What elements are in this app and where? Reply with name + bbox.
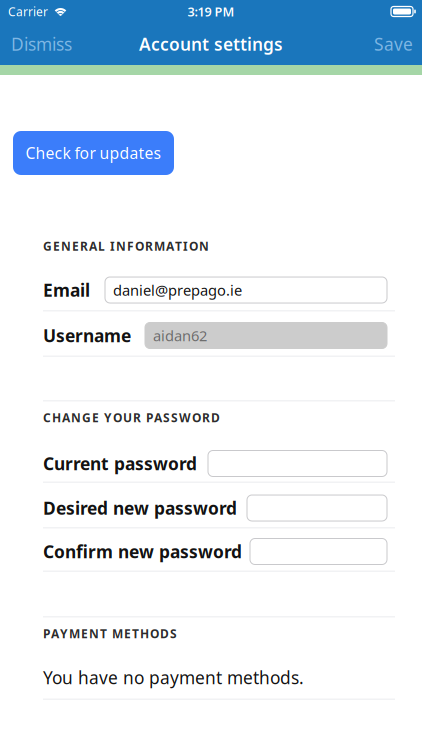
staticText: C H A N G E Y O U R P A S S W O R D	[43, 409, 220, 426]
staticText: Desired new password	[43, 496, 237, 520]
button[interactable]: Save	[365, 23, 422, 65]
staticText: 3:19 PM	[187, 3, 234, 20]
staticText: daniel@prepago.ie	[113, 280, 242, 300]
staticText: Carrier	[8, 3, 48, 20]
staticText: aidan62	[153, 325, 207, 345]
staticText: You have no payment methods.	[43, 666, 304, 689]
button[interactable]	[247, 495, 387, 521]
button[interactable]: daniel@prepago.ie	[105, 277, 387, 303]
button[interactable]	[208, 450, 387, 476]
button[interactable]	[250, 538, 387, 564]
button[interactable]: Check for updates	[13, 131, 174, 175]
button[interactable]: aidan62	[145, 322, 387, 348]
staticText: G E N E R A L I N F O R M A T I O N	[43, 238, 209, 254]
staticText: Save	[374, 32, 413, 56]
staticText: Confirm new password	[43, 540, 242, 563]
staticText: Check for updates	[25, 142, 161, 164]
staticText: P A Y M E N T M E T H O D S	[43, 625, 177, 642]
staticText: Email	[43, 278, 90, 302]
staticText: Dismiss	[11, 32, 72, 56]
staticText: Account settings	[139, 32, 283, 56]
staticText: Username	[43, 324, 131, 347]
button[interactable]: Dismiss	[0, 23, 83, 65]
staticText: Current password	[43, 452, 197, 475]
